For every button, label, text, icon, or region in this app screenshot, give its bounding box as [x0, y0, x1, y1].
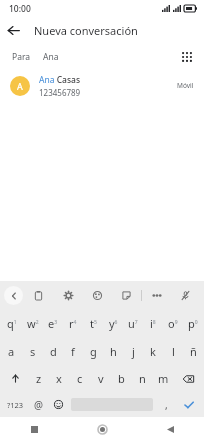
button[interactable]: x [49, 365, 69, 392]
button[interactable]: l [163, 338, 183, 365]
staticText: m [158, 371, 169, 386]
staticText: s [30, 344, 36, 359]
button[interactable]: s [22, 338, 43, 365]
button[interactable]: @ [28, 392, 48, 417]
staticText: x [56, 371, 62, 386]
button[interactable]: Voice input off [171, 281, 200, 309]
button[interactable]: i8 [143, 309, 163, 338]
staticText: , [165, 398, 168, 412]
staticText: d [50, 344, 57, 359]
button[interactable]: r4 [63, 309, 83, 338]
staticText: u7 [128, 316, 138, 331]
button[interactable]: A [0, 69, 204, 102]
button[interactable]: Clipboard [23, 281, 53, 309]
staticText: Ana [43, 51, 59, 63]
button[interactable]: , [156, 392, 176, 417]
button[interactable]: Theme [83, 281, 112, 309]
staticText: c [77, 371, 83, 386]
staticText: i8 [150, 316, 156, 331]
button[interactable]: q1 [1, 309, 22, 338]
button[interactable]: Recents [0, 417, 68, 442]
button[interactable]: u7 [123, 309, 143, 338]
staticText: r4 [69, 316, 77, 331]
staticText: b [118, 371, 125, 386]
staticText: e3 [48, 316, 58, 331]
button[interactable]: ?123 [2, 392, 28, 417]
button[interactable]: Back [0, 17, 27, 44]
staticText: v [98, 371, 104, 386]
button[interactable]: b [111, 365, 132, 392]
button[interactable]: g [83, 338, 103, 365]
button[interactable]: Home [68, 417, 136, 442]
button[interactable]: k [143, 338, 163, 365]
button[interactable]: Dialpad [176, 46, 197, 67]
button[interactable]: e3 [43, 309, 63, 338]
staticText: z [36, 371, 42, 386]
button[interactable]: Shift [1, 365, 29, 392]
button[interactable]: n [132, 365, 153, 392]
staticText: y6 [109, 316, 118, 331]
staticText: A [17, 80, 23, 92]
button[interactable]: Send [176, 392, 202, 417]
staticText: Para [12, 51, 31, 63]
staticText: q1 [7, 316, 17, 331]
button[interactable]: Back [136, 417, 204, 442]
staticText: t5 [90, 316, 97, 331]
button[interactable]: Settings [53, 281, 83, 309]
staticText: g [90, 344, 97, 359]
button[interactable]: w2 [22, 309, 43, 338]
button[interactable]: m [153, 365, 174, 392]
button[interactable]: ñ [183, 338, 203, 365]
staticText: k [150, 344, 156, 359]
staticText: @ [34, 398, 43, 412]
button[interactable]: Backspace [174, 365, 203, 392]
button[interactable]: Emoji [48, 392, 68, 417]
staticText: f [71, 344, 75, 359]
button[interactable]: f [63, 338, 83, 365]
staticText: l [172, 344, 175, 359]
staticText: h [110, 344, 117, 359]
button[interactable]: j [123, 338, 143, 365]
staticText: p0 [188, 316, 198, 331]
staticText: n [139, 371, 146, 386]
button[interactable]: p0 [183, 309, 203, 338]
staticText: ñ [190, 344, 197, 359]
button[interactable]: v [90, 365, 111, 392]
staticText: 123456789 [39, 87, 81, 98]
staticText: a [8, 344, 15, 359]
button[interactable]: Stickers [112, 281, 141, 309]
staticText: w2 [27, 316, 39, 331]
button[interactable]: z [29, 365, 49, 392]
button[interactable]: c [69, 365, 90, 392]
button[interactable]: Expand toolbar [4, 286, 23, 305]
button[interactable]: o9 [163, 309, 183, 338]
staticText: 10:00 [9, 3, 31, 15]
button[interactable]: t5 [83, 309, 103, 338]
staticText: Móvil [177, 81, 194, 90]
staticText: Ana Casas [39, 74, 81, 86]
staticText: o9 [168, 316, 178, 331]
staticText: j [132, 344, 135, 359]
button[interactable]: d [43, 338, 63, 365]
button[interactable]: y6 [103, 309, 123, 338]
button[interactable]: More options [142, 281, 171, 309]
button[interactable]: a [1, 338, 22, 365]
staticText: ?123 [7, 400, 24, 410]
staticText: Nueva conversación [34, 23, 138, 38]
button[interactable]: h [103, 338, 123, 365]
